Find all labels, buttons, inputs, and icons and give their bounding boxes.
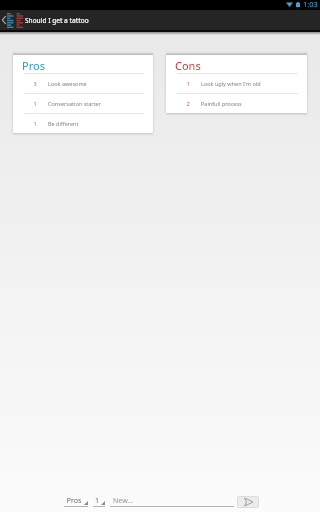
staticText: Look ugly when I'm old <box>201 80 261 87</box>
button[interactable]: Navigate up <box>0 10 24 30</box>
button[interactable]: 1 <box>93 496 105 507</box>
staticText: Pros <box>22 58 45 73</box>
staticText: Cons <box>175 58 201 73</box>
staticText: 2 <box>186 100 190 107</box>
staticText: Painfull process <box>201 100 242 107</box>
button[interactable]: 2 <box>166 94 307 113</box>
staticText: 1 <box>186 80 190 87</box>
staticText: 1 <box>33 100 37 107</box>
staticText: Pros <box>64 496 84 506</box>
button[interactable]: Pros <box>64 496 88 507</box>
staticText: 1 <box>33 120 37 127</box>
button[interactable]: 3 <box>13 74 153 93</box>
button[interactable]: 1 <box>13 114 153 133</box>
button[interactable]: 1 <box>13 94 153 113</box>
staticText: 1 <box>93 496 101 506</box>
staticText: 3 <box>33 80 37 87</box>
button[interactable]: Send <box>237 496 259 508</box>
staticText: New... <box>113 496 133 506</box>
staticText: Look awesome <box>48 80 87 87</box>
button[interactable]: 1 <box>166 74 307 93</box>
button[interactable]: New... <box>110 496 234 506</box>
staticText: Be different <box>48 120 79 127</box>
staticText: Conversation starter <box>48 100 101 107</box>
staticText: 1:03 <box>303 0 318 9</box>
staticText: Should I get a tattoo <box>25 16 89 25</box>
